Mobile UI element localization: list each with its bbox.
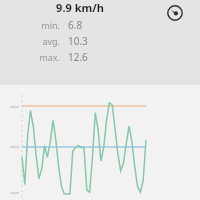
staticText: 10.3 <box>68 34 88 48</box>
button[interactable]: Speed gauge <box>164 2 186 24</box>
staticText: 9.9 km/h <box>30 0 130 15</box>
button[interactable]: min. <box>30 18 130 32</box>
staticText: avg. <box>30 35 60 47</box>
staticText: 12.6 <box>68 50 88 64</box>
staticText: min. <box>30 19 60 31</box>
button[interactable] <box>0 85 200 200</box>
staticText: 6.8 <box>68 18 83 32</box>
button[interactable]: max. <box>30 50 130 64</box>
staticText: max. <box>30 51 60 63</box>
button[interactable]: avg. <box>30 34 130 48</box>
